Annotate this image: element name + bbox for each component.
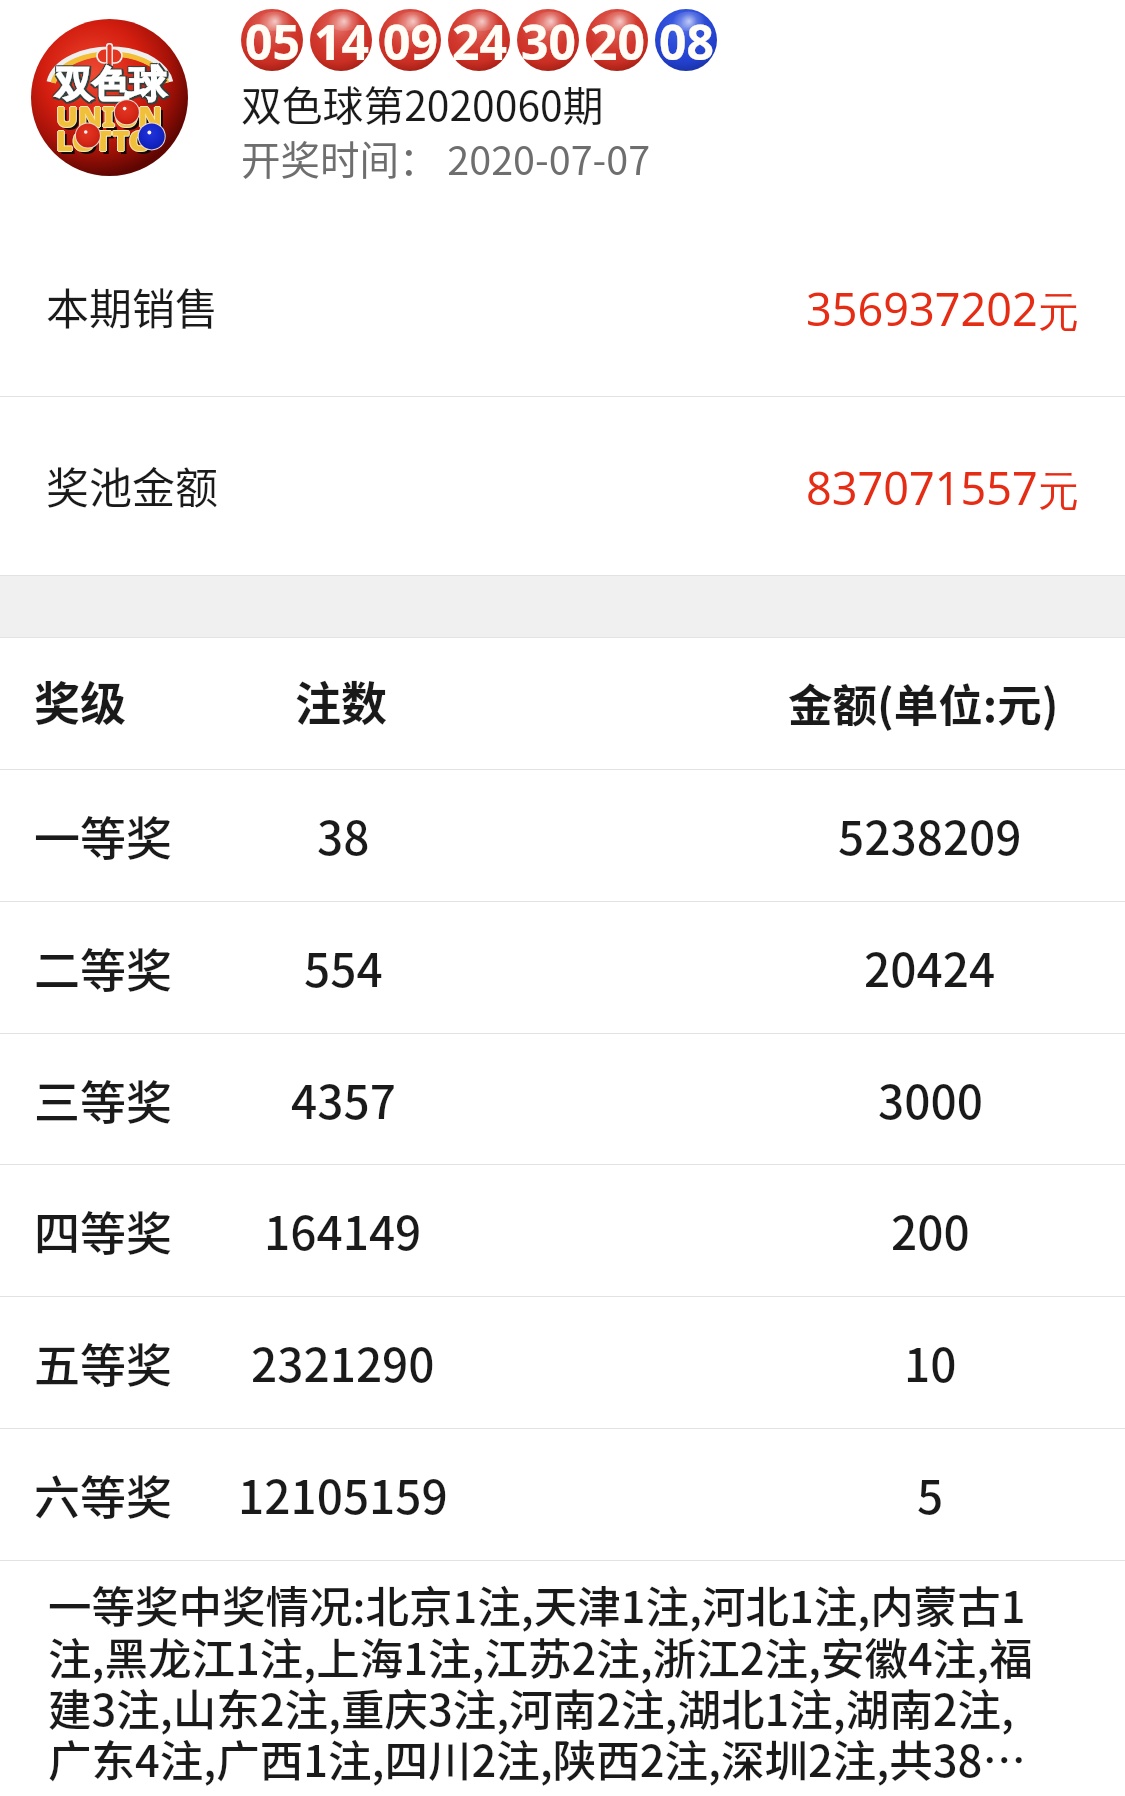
- staticText: 2321290: [251, 1329, 435, 1396]
- button[interactable]: 三等奖: [0, 1034, 1125, 1164]
- staticText: 20: [590, 9, 645, 71]
- staticText: LOTTO: [59, 123, 155, 162]
- button[interactable]: 二等奖: [0, 902, 1125, 1033]
- staticText: 四等奖: [34, 1197, 172, 1264]
- staticText: UNION: [55, 96, 162, 135]
- staticText: 本期销售: [46, 275, 218, 337]
- button[interactable]: 四等奖: [0, 1165, 1125, 1296]
- button[interactable]: 奖池金额: [0, 397, 1125, 575]
- button[interactable]: 一等奖: [0, 770, 1125, 901]
- staticText: 双色球: [54, 61, 165, 108]
- staticText: 二等奖: [34, 934, 172, 1001]
- staticText: LOTTO: [56, 121, 152, 160]
- staticText: 双色球第2020060期: [241, 74, 604, 133]
- staticText: 双色球: [55, 63, 166, 110]
- staticText: LOTTO: [56, 120, 152, 159]
- staticText: 5: [917, 1461, 944, 1528]
- staticText: 双色球: [54, 60, 165, 107]
- staticText: UNION: [56, 95, 163, 134]
- staticText: LOTTO: [55, 120, 151, 159]
- staticText: LOTTO: [57, 120, 153, 159]
- staticText: 09: [383, 9, 438, 71]
- staticText: 六等奖: [34, 1461, 172, 1528]
- staticText: UNION: [56, 97, 163, 136]
- staticText: 双色球: [57, 63, 168, 110]
- staticText: 元: [1038, 466, 1079, 518]
- staticText: 20424: [864, 934, 996, 1001]
- staticText: 奖级: [34, 667, 126, 734]
- staticText: 200: [891, 1197, 970, 1264]
- staticText: 双色球: [54, 63, 165, 110]
- staticText: 30: [521, 9, 576, 71]
- staticText: 一等奖: [34, 802, 172, 869]
- button[interactable]: 六等奖: [0, 1429, 1125, 1560]
- staticText: 12105159: [238, 1461, 448, 1528]
- staticText: 24: [452, 9, 507, 71]
- staticText: 164149: [264, 1197, 422, 1264]
- staticText: 注数: [295, 667, 387, 734]
- staticText: UNION: [56, 96, 163, 135]
- staticText: 554: [304, 934, 383, 1001]
- staticText: 4357: [291, 1066, 396, 1133]
- staticText: 双色球: [55, 61, 166, 108]
- staticText: LOTTO: [56, 119, 152, 158]
- staticText: 奖池金额: [46, 454, 218, 516]
- staticText: 一等奖中奖情况:北京1注,天津1注,河北1注,内蒙古1注,黑龙江1注,上海1注,…: [48, 1573, 1048, 1789]
- staticText: 5238209: [838, 802, 1022, 869]
- staticText: 356937202: [806, 278, 1038, 339]
- staticText: 双色球: [57, 61, 168, 108]
- staticText: 金额(单位:元): [788, 670, 1059, 734]
- staticText: 05: [245, 9, 300, 71]
- staticText: 元: [1038, 287, 1079, 339]
- staticText: 3000: [878, 1066, 983, 1133]
- staticText: 14: [314, 9, 369, 71]
- staticText: 08: [659, 9, 714, 71]
- button[interactable]: 五等奖: [0, 1297, 1125, 1428]
- staticText: 三等奖: [34, 1066, 172, 1133]
- staticText: UNION: [59, 99, 166, 138]
- staticText: 10: [904, 1329, 957, 1396]
- staticText: UNION: [57, 96, 164, 135]
- staticText: 开奖时间： 2020-07-07: [241, 129, 651, 186]
- staticText: 837071557: [806, 457, 1038, 518]
- staticText: 38: [317, 802, 370, 869]
- button[interactable]: 本期销售: [0, 218, 1125, 396]
- staticText: 双色球: [57, 60, 168, 107]
- staticText: 双色球: [55, 60, 166, 107]
- staticText: 五等奖: [34, 1329, 172, 1396]
